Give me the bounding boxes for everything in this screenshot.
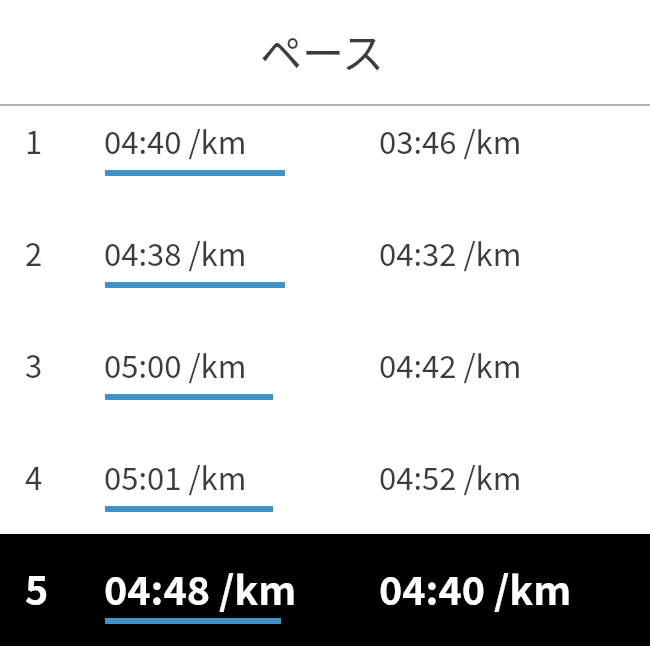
staticText: 5 bbox=[25, 559, 49, 616]
button[interactable]: 4 bbox=[0, 422, 650, 534]
staticText: 04:40 /km bbox=[104, 118, 247, 163]
staticText: 4 bbox=[25, 454, 43, 499]
staticText: ペース bbox=[260, 20, 384, 81]
button[interactable]: 2 bbox=[0, 198, 650, 310]
staticText: 3 bbox=[25, 342, 43, 387]
button[interactable]: 3 bbox=[0, 310, 650, 422]
staticText: 1 bbox=[25, 118, 43, 163]
button[interactable]: 5 bbox=[0, 534, 650, 646]
staticText: 04:52 /km bbox=[379, 454, 522, 499]
staticText: 04:48 /km bbox=[104, 559, 297, 616]
staticText: 04:42 /km bbox=[379, 342, 522, 387]
staticText: 05:00 /km bbox=[104, 342, 247, 387]
staticText: 04:40 /km bbox=[379, 559, 572, 616]
staticText: 2 bbox=[25, 230, 43, 275]
button[interactable]: 1 bbox=[0, 106, 650, 198]
staticText: 04:38 /km bbox=[104, 230, 247, 275]
button[interactable]: Pace bbox=[0, 0, 650, 104]
staticText: 04:32 /km bbox=[379, 230, 522, 275]
staticText: 03:46 /km bbox=[379, 118, 522, 163]
staticText: 05:01 /km bbox=[104, 454, 247, 499]
